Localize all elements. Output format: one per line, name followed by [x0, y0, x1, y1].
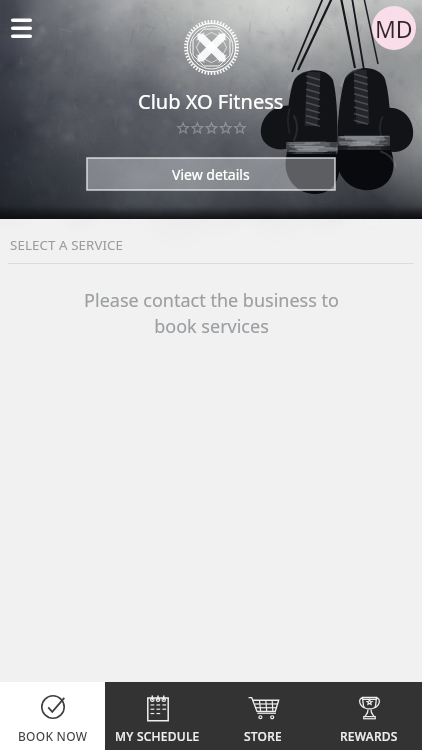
- staticText: Club XO Fitness: [138, 88, 284, 115]
- button[interactable]: REWARDS: [316, 682, 422, 750]
- staticText: MD: [375, 13, 413, 44]
- staticText: SELECT A SERVICE: [10, 236, 124, 254]
- staticText: REWARDS: [340, 728, 398, 744]
- button[interactable]: BOOK NOW: [0, 682, 105, 750]
- staticText: View details: [172, 165, 250, 184]
- button[interactable]: Menu: [1, 8, 41, 48]
- button[interactable]: STORE: [210, 682, 316, 750]
- staticText: MY SCHEDULE: [115, 728, 200, 744]
- staticText: Please contact the business to book serv…: [84, 288, 339, 339]
- button[interactable]: MY SCHEDULE: [105, 682, 210, 750]
- staticText: BOOK NOW: [18, 728, 88, 744]
- staticText: STORE: [244, 728, 283, 744]
- button[interactable]: MD: [372, 6, 416, 50]
- button[interactable]: View details: [87, 158, 335, 190]
